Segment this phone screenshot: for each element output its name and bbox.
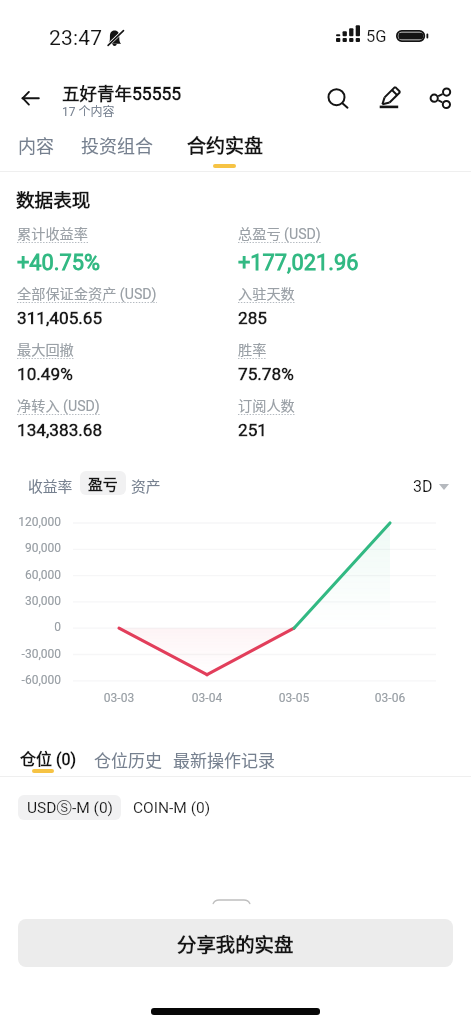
- staticText: 3D: [413, 477, 433, 496]
- staticText: 全部保证金资产 (USD): [17, 283, 157, 304]
- staticText: 134,383.68: [17, 420, 103, 440]
- button[interactable]: 最新操作记录: [168, 741, 280, 778]
- staticText: 90,000: [0, 541, 61, 555]
- button[interactable]: Back: [10, 78, 50, 118]
- staticText: 03-06: [360, 691, 420, 705]
- staticText: 胜率: [238, 339, 267, 360]
- button[interactable]: 资产: [122, 468, 170, 503]
- button[interactable]: Edit: [370, 75, 415, 120]
- staticText: 总盈亏 (USD): [238, 223, 321, 244]
- staticText: 251: [238, 420, 267, 440]
- staticText: 资产: [131, 475, 161, 496]
- staticText: 03-04: [177, 691, 237, 705]
- staticText: 0: [0, 620, 61, 634]
- staticText: 投资组合: [81, 132, 153, 158]
- button[interactable]: Search: [314, 75, 359, 120]
- staticText: 60,000: [0, 568, 61, 582]
- button[interactable]: 仓位 (0): [15, 740, 82, 775]
- staticText: USDⓈ-M (0): [27, 798, 113, 818]
- button[interactable]: 收益率: [19, 468, 82, 503]
- staticText: 收益率: [28, 475, 73, 496]
- button[interactable]: COIN-M (0): [124, 795, 220, 820]
- staticText: 75.78%: [238, 364, 294, 384]
- button[interactable]: 合约实盘: [177, 124, 274, 166]
- staticText: COIN-M (0): [133, 799, 211, 817]
- staticText: 仓位 (0): [20, 746, 77, 769]
- staticText: 仓位历史: [94, 747, 162, 772]
- staticText: 净转入 (USD): [17, 395, 100, 416]
- button[interactable]: 内容: [8, 125, 64, 165]
- staticText: 最大回撤: [17, 339, 74, 360]
- staticText: 03-05: [264, 691, 324, 705]
- button[interactable]: USDⓈ-M (0): [18, 795, 121, 820]
- staticText: +40.75%: [17, 250, 101, 276]
- staticText: +177,021.96: [238, 250, 359, 276]
- staticText: 17 个内容: [62, 102, 115, 119]
- staticText: 盈亏: [88, 473, 118, 494]
- staticText: 285: [238, 308, 267, 328]
- staticText: 合约实盘: [187, 131, 264, 159]
- staticText: 311,405.65: [17, 308, 103, 328]
- button[interactable]: 盈亏: [80, 471, 126, 495]
- staticText: 五好青年55555: [62, 80, 182, 105]
- staticText: 5G: [366, 27, 387, 46]
- button[interactable]: 仓位历史: [89, 741, 167, 778]
- button[interactable]: 3D: [408, 472, 454, 501]
- staticText: 订阅人数: [238, 395, 295, 416]
- staticText: 最新操作记录: [173, 747, 275, 772]
- staticText: -60,000: [0, 673, 61, 687]
- button[interactable]: 分享我的实盘: [18, 919, 453, 967]
- staticText: 入驻天数: [238, 283, 295, 304]
- staticText: 03-03: [89, 691, 149, 705]
- button[interactable]: Share: [424, 75, 469, 120]
- button[interactable]: 投资组合: [71, 125, 163, 165]
- staticText: 数据表现: [16, 185, 91, 212]
- staticText: 分享我的实盘: [177, 929, 294, 957]
- staticText: 120,000: [0, 515, 61, 529]
- staticText: -30,000: [0, 647, 61, 661]
- staticText: 内容: [18, 132, 54, 158]
- staticText: 累计收益率: [17, 223, 88, 244]
- staticText: 23:47: [49, 26, 103, 51]
- staticText: 10.49%: [17, 364, 73, 384]
- staticText: 30,000: [0, 594, 61, 608]
